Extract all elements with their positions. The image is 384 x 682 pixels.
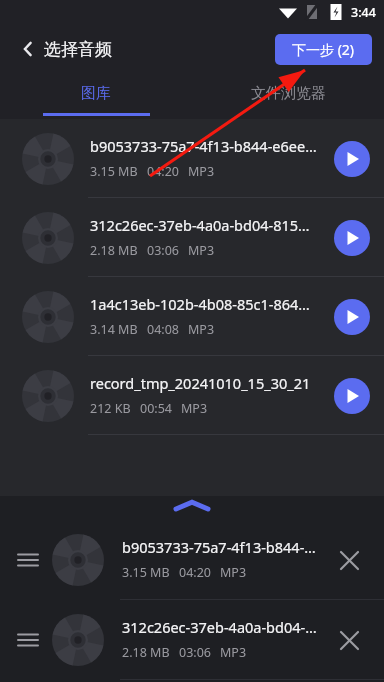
staticText: 3.15 MB	[90, 163, 138, 180]
staticText: 3.14 MB	[90, 321, 138, 338]
button[interactable]: 文件浏览器	[192, 74, 384, 119]
button[interactable]: b9053733-75a7-4f13-b844-e6ee…	[0, 119, 384, 198]
staticText: 312c26ec-37eb-4a0a-bd04-815…	[90, 215, 310, 235]
staticText: 00:54	[140, 400, 172, 417]
staticText: 下一步 (2)	[292, 40, 355, 59]
staticText: 文件浏览器	[251, 84, 326, 103]
button[interactable]: record_tmp_20241010_15_30_21	[0, 356, 384, 435]
button[interactable]: Reorder	[0, 600, 384, 680]
staticText: 03:06	[147, 242, 179, 259]
other: Reorder	[16, 628, 40, 652]
button[interactable]: 1a4c13eb-102b-4b08-85c1-864…	[0, 277, 384, 356]
button[interactable]: Remove	[332, 623, 366, 657]
button[interactable]: Play	[334, 220, 370, 256]
button[interactable]: Play	[334, 378, 370, 414]
button[interactable]: Play	[334, 141, 370, 177]
button[interactable]: 下一步 (2)	[275, 34, 372, 65]
staticText: MP3	[220, 564, 247, 581]
staticText: 04:20	[179, 564, 211, 581]
staticText: MP3	[188, 242, 215, 259]
button[interactable]: 图库	[0, 74, 192, 119]
staticText: b9053733-75a7-4f13-b844-e6ee…	[90, 136, 317, 156]
staticText: 03:06	[179, 644, 211, 661]
staticText: 312c26ec-37eb-4a0a-bd04-8…	[122, 617, 322, 637]
staticText: record_tmp_20241010_15_30_21	[90, 373, 311, 393]
staticText: 2.18 MB	[122, 644, 170, 661]
button[interactable]: Back	[8, 29, 48, 69]
staticText: b9053733-75a7-4f13-b844-e…	[122, 537, 322, 557]
staticText: 212 KB	[90, 400, 131, 417]
staticText: 04:20	[147, 163, 179, 180]
staticText: 2.18 MB	[90, 242, 138, 259]
staticText: MP3	[188, 163, 215, 180]
button[interactable]: Reorder	[0, 520, 384, 600]
staticText: 3.15 MB	[122, 564, 170, 581]
staticText: 选择音频	[44, 39, 112, 60]
staticText: 04:08	[147, 321, 179, 338]
button[interactable]: Play	[334, 299, 370, 335]
staticText: 图库	[81, 84, 111, 103]
staticText: 3:44	[351, 4, 376, 21]
staticText: 1a4c13eb-102b-4b08-85c1-864…	[90, 294, 310, 314]
staticText: MP3	[220, 644, 247, 661]
staticText: MP3	[181, 400, 208, 417]
other: Reorder	[16, 548, 40, 572]
button[interactable]: Remove	[332, 543, 366, 577]
staticText: MP3	[188, 321, 215, 338]
button[interactable]: 312c26ec-37eb-4a0a-bd04-815…	[0, 198, 384, 277]
